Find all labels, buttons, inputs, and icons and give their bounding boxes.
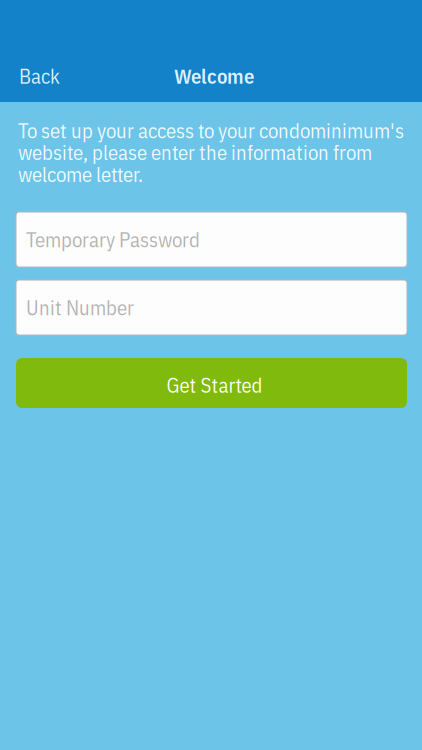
button[interactable]: Back bbox=[0, 54, 122, 98]
staticText: Get Started bbox=[166, 372, 262, 398]
staticText: Welcome bbox=[174, 63, 254, 89]
staticText: Temporary Password bbox=[26, 226, 200, 253]
button[interactable]: Get Started bbox=[16, 358, 407, 408]
staticText: To set up your access to your condominim… bbox=[18, 117, 404, 188]
staticText: Unit Number bbox=[26, 294, 134, 321]
staticText: Back bbox=[19, 63, 60, 89]
